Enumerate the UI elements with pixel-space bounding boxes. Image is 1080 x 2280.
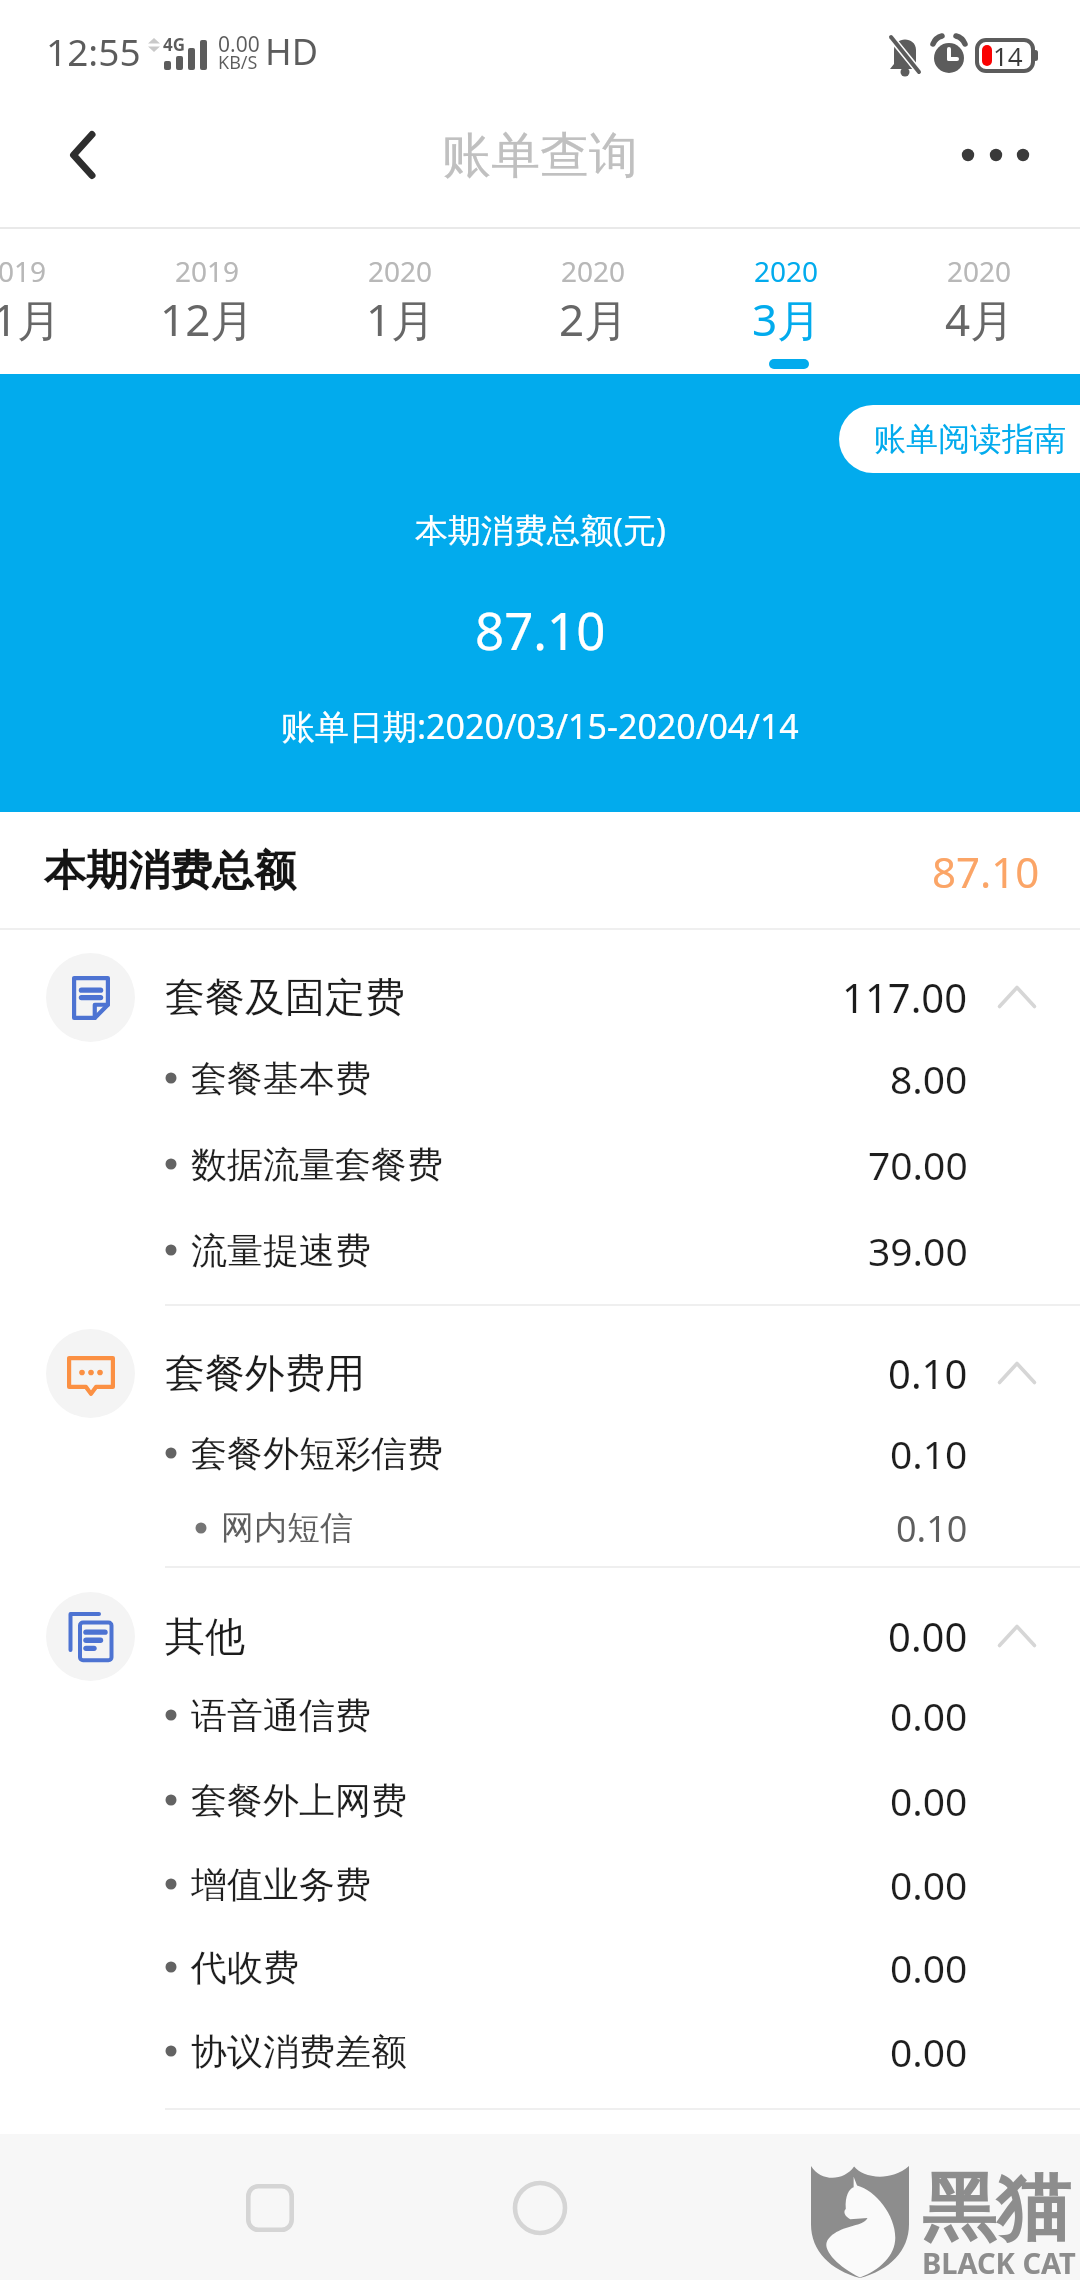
staticText: 代收费 xyxy=(191,1945,299,1990)
staticText: 账单阅读指南 xyxy=(874,419,1066,459)
staticText: 语音通信费 xyxy=(191,1693,371,1738)
staticText: 0.10 xyxy=(896,1504,968,1553)
staticText: 增值业务费 xyxy=(191,1862,371,1907)
button[interactable]: More options xyxy=(920,100,1080,228)
button[interactable]: 增值业务费 xyxy=(0,1842,1080,1926)
staticText: 12月 xyxy=(160,289,255,349)
button[interactable]: 套餐外上网费 xyxy=(0,1758,1080,1842)
staticText: 87.10 xyxy=(932,843,1040,900)
button[interactable]: 数据流量套餐费 xyxy=(0,1122,1080,1206)
button[interactable]: 代收费 xyxy=(0,1925,1080,2009)
staticText: 3月 xyxy=(752,289,822,349)
staticText: 网内短信 xyxy=(221,1507,353,1549)
button[interactable]: 2020 xyxy=(690,228,883,374)
button[interactable]: Home xyxy=(495,2163,585,2253)
staticText: 流量提速费 xyxy=(191,1228,371,1273)
staticText: HD xyxy=(265,27,318,76)
button[interactable]: 网内短信 xyxy=(0,1486,1080,1570)
button[interactable]: 2020 xyxy=(883,228,1076,374)
staticText: 4G xyxy=(163,33,186,56)
staticText: 117.00 xyxy=(842,970,968,1024)
staticText: 账单日期:2020/03/15-2020/04/14 xyxy=(281,703,799,749)
staticText: 套餐外上网费 xyxy=(191,1778,407,1823)
staticText: 套餐及固定费 xyxy=(165,972,405,1022)
staticText: 2020 xyxy=(368,252,433,290)
button[interactable]: Back xyxy=(0,100,160,228)
staticText: 87.10 xyxy=(475,595,606,664)
button[interactable]: 其他 xyxy=(0,1584,1080,1688)
staticText: 39.00 xyxy=(868,1224,968,1277)
staticText: 黑猫 xyxy=(922,2162,1070,2255)
staticText: 其他 xyxy=(165,1611,245,1661)
button[interactable]: 语音通信费 xyxy=(0,1673,1080,1757)
staticText: 70.00 xyxy=(868,1138,968,1191)
staticText: 2019 xyxy=(0,252,47,290)
button[interactable]: 2019 xyxy=(0,228,111,374)
staticText: 8.00 xyxy=(890,1052,968,1105)
staticText: 套餐外短彩信费 xyxy=(191,1431,443,1476)
staticText: 0.00 xyxy=(890,1858,968,1911)
button[interactable]: Recent apps xyxy=(225,2163,315,2253)
staticText: 0.00 xyxy=(890,1689,968,1742)
staticText: 12:55 xyxy=(46,26,141,76)
staticText: 本期消费总额 xyxy=(44,845,296,898)
staticText: 0.10 xyxy=(888,1346,968,1400)
button[interactable]: 2020 xyxy=(497,228,690,374)
staticText: 1月 xyxy=(366,289,436,349)
button[interactable]: 2019 xyxy=(111,228,304,374)
staticText: 0.00 xyxy=(890,1774,968,1827)
staticText: 4月 xyxy=(945,289,1015,349)
staticText: 0.00 xyxy=(890,2025,968,2078)
staticText: 2019 xyxy=(175,252,240,290)
staticText: 2020 xyxy=(947,252,1012,290)
staticText: 套餐外费用 xyxy=(165,1348,365,1398)
staticText: 协议消费差额 xyxy=(191,2029,407,2074)
button[interactable]: 套餐外费用 xyxy=(0,1321,1080,1425)
staticText: 本期消费总额(元) xyxy=(415,507,666,552)
button[interactable]: 流量提速费 xyxy=(0,1208,1080,1292)
staticText: 账单查询 xyxy=(442,125,638,187)
staticText: BLACK CAT xyxy=(922,2243,1076,2280)
staticText: 套餐基本费 xyxy=(191,1056,371,1101)
staticText: 0.00 xyxy=(218,30,260,59)
staticText: 2020 xyxy=(754,252,819,290)
staticText: 数据流量套餐费 xyxy=(191,1142,443,1187)
button[interactable]: 账单阅读指南 xyxy=(839,405,1080,473)
staticText: 0.00 xyxy=(890,1941,968,1994)
staticText: 11月 xyxy=(0,289,62,349)
button[interactable]: 套餐基本费 xyxy=(0,1036,1080,1120)
staticText: 2月 xyxy=(559,289,629,349)
staticText: KB/S xyxy=(218,50,258,75)
button[interactable]: 2020 xyxy=(304,228,497,374)
staticText: 0.00 xyxy=(888,1609,968,1663)
staticText: 14 xyxy=(993,38,1023,73)
staticText: 0.10 xyxy=(890,1427,968,1480)
button[interactable]: 套餐及固定费 xyxy=(0,945,1080,1049)
button[interactable]: 套餐外短彩信费 xyxy=(0,1411,1080,1495)
button[interactable]: 协议消费差额 xyxy=(0,2009,1080,2093)
staticText: 2020 xyxy=(561,252,626,290)
